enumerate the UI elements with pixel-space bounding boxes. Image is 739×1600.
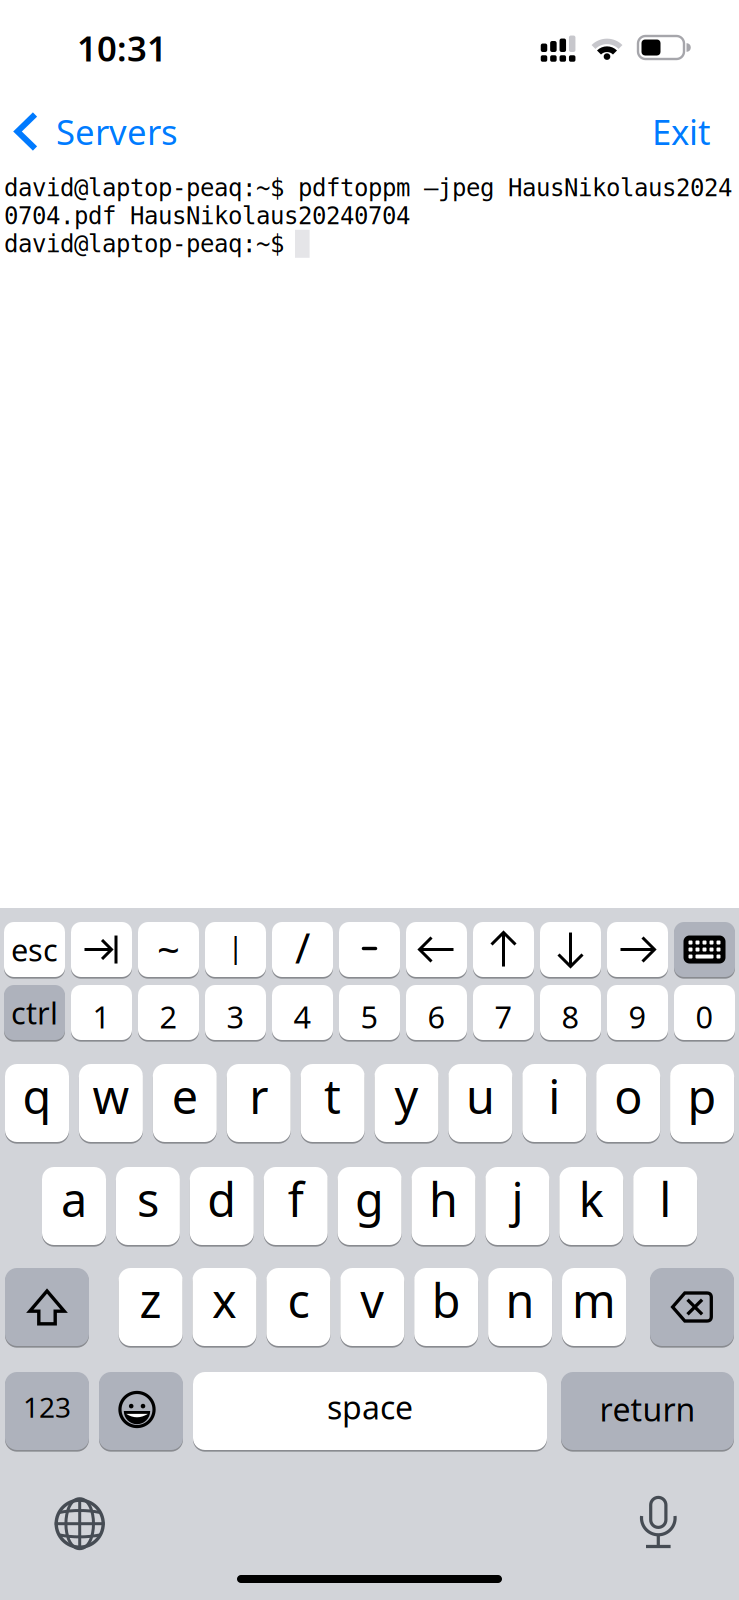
button[interactable]: Escape: [4, 921, 65, 978]
button[interactable]: Shift: [5, 1267, 89, 1347]
staticText: space: [327, 1386, 413, 1428]
button[interactable]: e: [153, 1063, 217, 1143]
button[interactable]: z: [119, 1267, 183, 1347]
button[interactable]: m: [562, 1267, 626, 1347]
button[interactable]: Numbers: [5, 1371, 89, 1451]
staticText: r: [249, 1065, 268, 1127]
button[interactable]: Next Keyboard: [40, 1484, 120, 1564]
staticText: o: [614, 1065, 642, 1127]
button[interactable]: t: [301, 1063, 365, 1143]
staticText: 0: [695, 996, 713, 1037]
button[interactable]: g: [338, 1166, 402, 1246]
button[interactable]: Dismiss Keyboard: [674, 921, 735, 978]
staticText: 1: [92, 996, 110, 1037]
button[interactable]: r: [227, 1063, 291, 1143]
staticText: d: [207, 1168, 236, 1230]
button[interactable]: v: [340, 1267, 404, 1347]
button[interactable]: Emoji: [99, 1371, 183, 1451]
staticText: g: [355, 1168, 384, 1230]
staticText: 10:31: [77, 25, 167, 71]
staticText: david@laptop-peaq:~$: [4, 230, 284, 258]
staticText: 0704.pdf HausNikolaus20240704: [4, 202, 410, 230]
button[interactable]: 5: [339, 984, 400, 1041]
staticText: p: [688, 1065, 717, 1127]
button[interactable]: Dictation: [618, 1482, 698, 1562]
staticText: t: [324, 1065, 341, 1127]
button[interactable]: p: [670, 1063, 734, 1143]
button[interactable]: k: [559, 1166, 623, 1246]
button[interactable]: i: [522, 1063, 586, 1143]
button[interactable]: Up Arrow: [473, 921, 534, 978]
staticText: esc: [11, 929, 58, 970]
button[interactable]: o: [596, 1063, 660, 1143]
button[interactable]: d: [190, 1166, 254, 1246]
button[interactable]: |: [205, 921, 266, 978]
staticText: l: [659, 1168, 671, 1230]
button[interactable]: 9: [607, 984, 668, 1041]
button[interactable]: /: [272, 921, 333, 978]
staticText: m: [572, 1269, 616, 1331]
button[interactable]: 6: [406, 984, 467, 1041]
button[interactable]: y: [374, 1063, 438, 1143]
staticText: 8: [561, 996, 579, 1037]
button[interactable]: return: [561, 1371, 734, 1451]
staticText: return: [599, 1388, 695, 1430]
staticText: h: [429, 1168, 458, 1230]
staticText: x: [212, 1269, 237, 1331]
button[interactable]: l: [633, 1166, 697, 1246]
staticText: Exit: [652, 108, 711, 154]
staticText: 9: [628, 996, 646, 1037]
button[interactable]: x: [192, 1267, 256, 1347]
staticText: j: [511, 1168, 523, 1230]
button[interactable]: ~: [138, 921, 199, 978]
staticText: e: [172, 1065, 198, 1127]
staticText: q: [22, 1065, 51, 1127]
staticText: k: [579, 1168, 604, 1230]
staticText: 5: [360, 996, 378, 1037]
staticText: u: [466, 1065, 495, 1127]
staticText: v: [360, 1269, 384, 1331]
button[interactable]: Down Arrow: [540, 921, 601, 978]
staticText: 7: [494, 996, 512, 1037]
button[interactable]: c: [266, 1267, 330, 1347]
button[interactable]: h: [411, 1166, 475, 1246]
button[interactable]: 0: [674, 984, 735, 1041]
staticText: |: [227, 927, 243, 966]
button[interactable]: Left Arrow: [406, 921, 467, 978]
button[interactable]: 3: [205, 984, 266, 1041]
staticText: f: [288, 1168, 304, 1230]
staticText: c: [287, 1269, 309, 1331]
button[interactable]: b: [414, 1267, 478, 1347]
staticText: ctrl: [11, 992, 58, 1033]
button[interactable]: a: [42, 1166, 106, 1246]
button[interactable]: Delete: [650, 1267, 734, 1347]
button[interactable]: Back to Servers: [14, 101, 234, 161]
staticText: n: [506, 1269, 535, 1331]
button[interactable]: j: [485, 1166, 549, 1246]
button[interactable]: 2: [138, 984, 199, 1041]
button[interactable]: q: [5, 1063, 69, 1143]
staticText: ~: [157, 923, 180, 976]
staticText: i: [548, 1065, 560, 1127]
button[interactable]: Right Arrow: [607, 921, 668, 978]
staticText: y: [394, 1065, 418, 1127]
button[interactable]: 1: [71, 984, 132, 1041]
button[interactable]: space: [193, 1371, 547, 1451]
staticText: a: [61, 1168, 87, 1230]
staticText: z: [140, 1269, 162, 1331]
button[interactable]: 8: [540, 984, 601, 1041]
button[interactable]: Dash: [339, 921, 400, 978]
button[interactable]: Exit: [626, 101, 736, 161]
staticText: w: [92, 1065, 129, 1127]
staticText: 6: [427, 996, 445, 1037]
button[interactable]: s: [116, 1166, 180, 1246]
button[interactable]: 4: [272, 984, 333, 1041]
button[interactable]: w: [79, 1063, 143, 1143]
button[interactable]: u: [448, 1063, 512, 1143]
button[interactable]: 7: [473, 984, 534, 1041]
button[interactable]: Tab: [71, 921, 132, 978]
staticText: 123: [23, 1388, 71, 1426]
button[interactable]: f: [264, 1166, 328, 1246]
button[interactable]: Control: [4, 984, 65, 1041]
button[interactable]: n: [488, 1267, 552, 1347]
